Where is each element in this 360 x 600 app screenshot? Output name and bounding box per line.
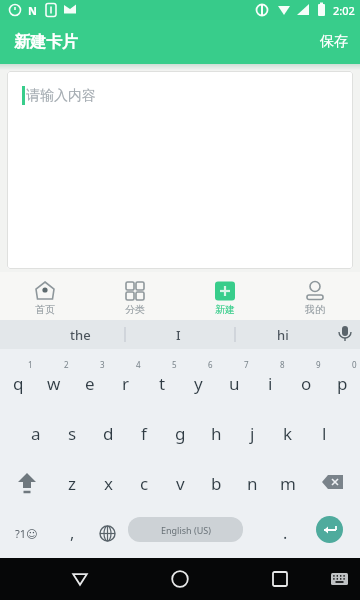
staticText: r — [122, 372, 130, 395]
staticText: I — [176, 326, 181, 344]
staticText: 保存 — [320, 33, 348, 51]
button[interactable]: hi — [243, 320, 323, 349]
button[interactable]: 首页 — [0, 272, 90, 320]
button[interactable]: u — [216, 358, 252, 408]
staticText: 0 — [352, 359, 357, 370]
button[interactable]: q — [0, 358, 36, 408]
staticText: 我的 — [305, 303, 325, 316]
staticText: ?1☺ — [15, 526, 38, 541]
staticText: English (US) — [161, 524, 211, 536]
button[interactable]: p — [324, 358, 360, 408]
staticText: , — [70, 522, 75, 544]
button[interactable]: 新建 — [180, 272, 270, 320]
button[interactable]: n — [234, 458, 270, 508]
button[interactable]: English (US) — [128, 517, 243, 542]
button[interactable]: I — [138, 320, 218, 349]
staticText: m — [280, 472, 296, 495]
button[interactable]: k — [270, 408, 306, 458]
button[interactable] — [0, 458, 54, 508]
staticText: u — [229, 372, 240, 395]
button[interactable]: 分类 — [90, 272, 180, 320]
staticText: f — [141, 422, 147, 445]
staticText: a — [31, 422, 41, 445]
button[interactable]: t — [144, 358, 180, 408]
staticText: 7 — [244, 359, 249, 370]
staticText: v — [176, 472, 185, 495]
staticText: y — [194, 372, 203, 395]
staticText: 请输入内容 — [26, 87, 96, 105]
button[interactable]: g — [162, 408, 198, 458]
button[interactable]: a — [18, 408, 54, 458]
button[interactable] — [255, 558, 305, 600]
button[interactable]: the — [40, 320, 120, 349]
staticText: 5 — [172, 359, 177, 370]
staticText: . — [283, 522, 288, 544]
staticText: 2 — [64, 359, 69, 370]
staticText: 1 — [28, 359, 33, 370]
staticText: 2:02 — [333, 3, 355, 18]
button[interactable] — [55, 558, 105, 600]
staticText: w — [47, 372, 61, 395]
button[interactable]: c — [126, 458, 162, 508]
button[interactable]: v — [162, 458, 198, 508]
staticText: 4 — [136, 359, 141, 370]
staticText: 3 — [100, 359, 105, 370]
button[interactable]: y — [180, 358, 216, 408]
staticText: b — [211, 472, 222, 495]
staticText: N — [28, 3, 37, 18]
staticText: x — [104, 472, 113, 495]
button[interactable]: b — [198, 458, 234, 508]
staticText: 6 — [208, 359, 213, 370]
staticText: z — [68, 472, 76, 495]
staticText: e — [85, 372, 95, 395]
button[interactable]: 请输入内容 — [7, 71, 353, 269]
button[interactable]: ?1☺ — [0, 508, 52, 558]
button[interactable]: h — [198, 408, 234, 458]
staticText: l — [322, 422, 327, 445]
staticText: hi — [277, 326, 289, 344]
staticText: 8 — [280, 359, 285, 370]
button[interactable]: s — [54, 408, 90, 458]
button[interactable]: o — [288, 358, 324, 408]
button[interactable]: w — [36, 358, 72, 408]
staticText: d — [103, 422, 114, 445]
button[interactable] — [90, 508, 124, 558]
staticText: i — [268, 372, 273, 395]
button[interactable] — [306, 458, 360, 508]
button[interactable]: f — [126, 408, 162, 458]
staticText: 分类 — [125, 303, 145, 316]
staticText: q — [13, 372, 24, 395]
button[interactable]: m — [270, 458, 306, 508]
button[interactable]: j — [234, 408, 270, 458]
button[interactable]: e — [72, 358, 108, 408]
button[interactable]: d — [90, 408, 126, 458]
button[interactable]: , — [54, 508, 90, 558]
staticText: s — [68, 422, 77, 445]
staticText: k — [283, 422, 293, 445]
button[interactable] — [155, 558, 205, 600]
button[interactable]: r — [108, 358, 144, 408]
button[interactable]: 保存 — [308, 20, 360, 64]
staticText: 首页 — [35, 303, 55, 316]
staticText: n — [247, 472, 258, 495]
staticText: c — [140, 472, 149, 495]
staticText: t — [159, 372, 166, 395]
staticText: h — [211, 422, 222, 445]
staticText: j — [250, 422, 255, 445]
staticText: 新建卡片 — [14, 32, 78, 52]
staticText: 新建 — [215, 303, 235, 316]
button[interactable] — [316, 516, 343, 543]
button[interactable]: x — [90, 458, 126, 508]
staticText: o — [301, 372, 312, 395]
staticText: g — [175, 422, 186, 445]
button[interactable] — [322, 558, 356, 600]
staticText: 9 — [316, 359, 321, 370]
staticText: the — [70, 326, 91, 344]
button[interactable]: . — [262, 508, 308, 558]
button[interactable]: 我的 — [270, 272, 360, 320]
button[interactable]: l — [306, 408, 342, 458]
button[interactable]: i — [252, 358, 288, 408]
staticText: p — [337, 372, 348, 395]
button[interactable]: z — [54, 458, 90, 508]
